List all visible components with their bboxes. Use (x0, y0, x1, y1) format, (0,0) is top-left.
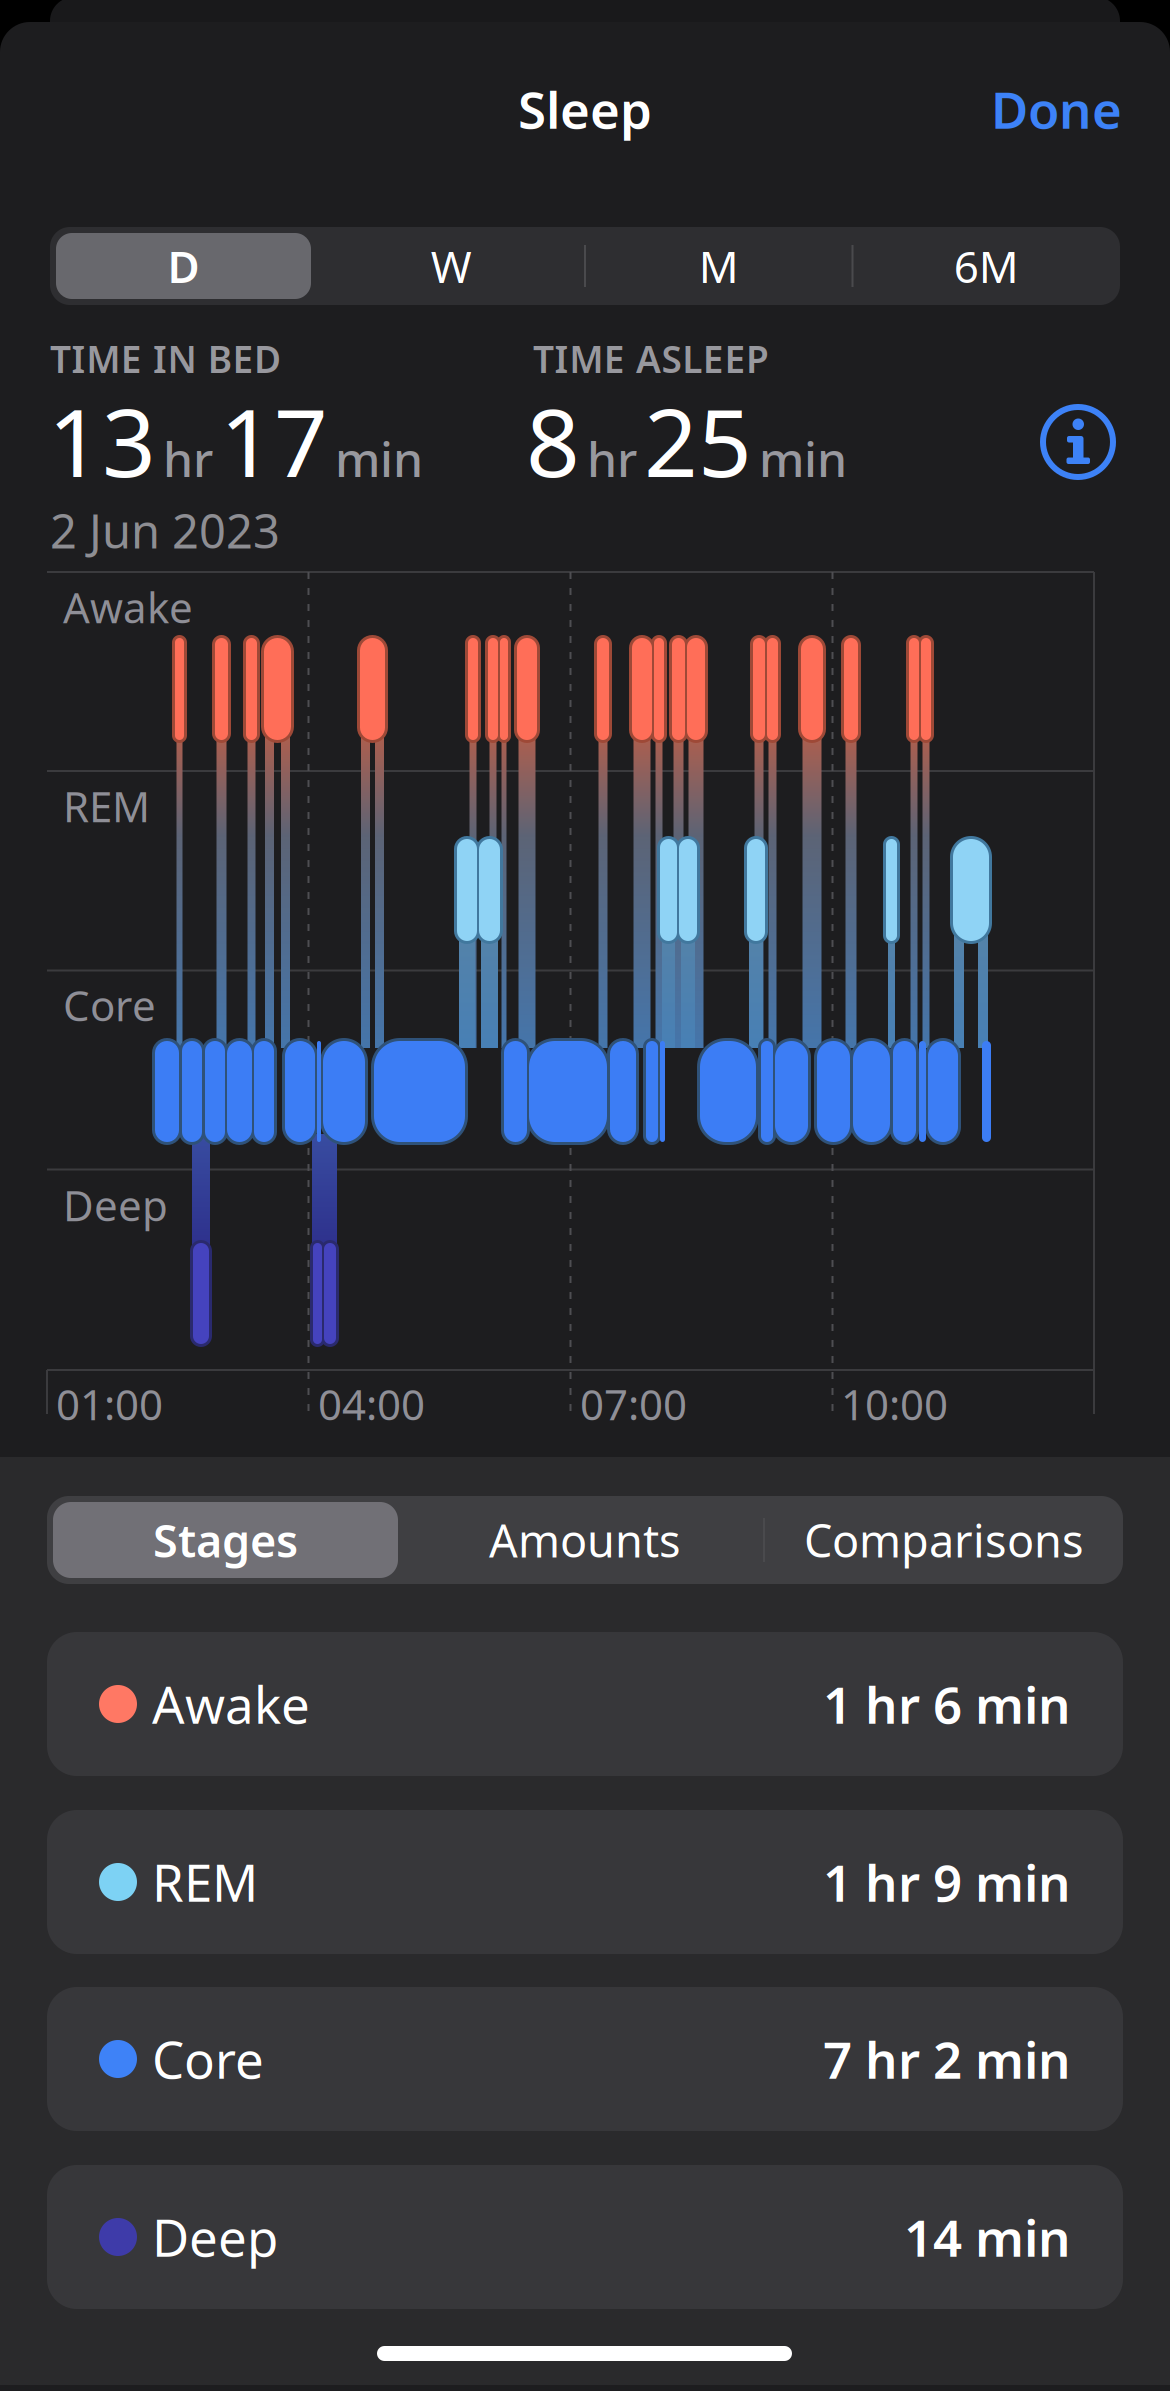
staticText: 8 (526, 378, 580, 503)
button[interactable]: M (591, 233, 846, 299)
staticText: 07:00 (580, 1376, 687, 1432)
staticText: Awake (152, 1670, 310, 1738)
button[interactable]: Done (902, 78, 1122, 140)
button[interactable]: D (56, 233, 311, 299)
staticText: W (431, 237, 472, 295)
staticText: Comparisons (804, 1510, 1084, 1570)
staticText: 13 (48, 378, 156, 503)
staticText: Amounts (489, 1510, 681, 1570)
staticText: hr (163, 426, 213, 490)
staticText: Deep (63, 1177, 168, 1233)
staticText: Done (991, 75, 1122, 143)
staticText: Stages (153, 1510, 298, 1570)
staticText: Sleep (518, 75, 652, 143)
staticText: 04:00 (318, 1376, 425, 1432)
button[interactable]: Deep (47, 2165, 1123, 2309)
staticText: REM (63, 778, 150, 834)
staticText: M (699, 237, 739, 295)
button[interactable]: Comparisons (744, 1502, 1144, 1578)
staticText: REM (152, 1848, 258, 1916)
button[interactable]: W (324, 233, 579, 299)
button[interactable]: About Sleep (1042, 406, 1114, 478)
button[interactable]: 6M (859, 233, 1114, 299)
staticText: TIME ASLEEP (533, 334, 769, 383)
staticText: 6M (954, 237, 1019, 295)
button[interactable]: Amounts (410, 1502, 760, 1578)
staticText: Deep (152, 2203, 278, 2271)
button[interactable]: Core (47, 1987, 1123, 2131)
button[interactable]: REM (47, 1810, 1123, 1954)
staticText: 1 hr 9 min (823, 1848, 1071, 1916)
button[interactable]: Stages (53, 1502, 398, 1578)
staticText: 01:00 (56, 1376, 163, 1432)
staticText: 10:00 (841, 1376, 948, 1432)
staticText: Core (152, 2025, 264, 2093)
staticText: min (759, 426, 847, 490)
staticText: 1 hr 6 min (823, 1670, 1071, 1738)
staticText: Core (63, 977, 156, 1033)
staticText: hr (587, 426, 637, 490)
staticText: Awake (63, 579, 193, 635)
staticText: 2 Jun 2023 (50, 499, 280, 561)
staticText: 14 min (904, 2203, 1071, 2271)
staticText: 7 hr 2 min (823, 2025, 1071, 2093)
staticText: 25 (644, 378, 752, 503)
staticText: min (335, 426, 423, 490)
staticText: TIME IN BED (50, 334, 281, 383)
staticText: 17 (220, 378, 328, 503)
staticText: D (167, 237, 199, 295)
button[interactable]: Awake (47, 1632, 1123, 1776)
